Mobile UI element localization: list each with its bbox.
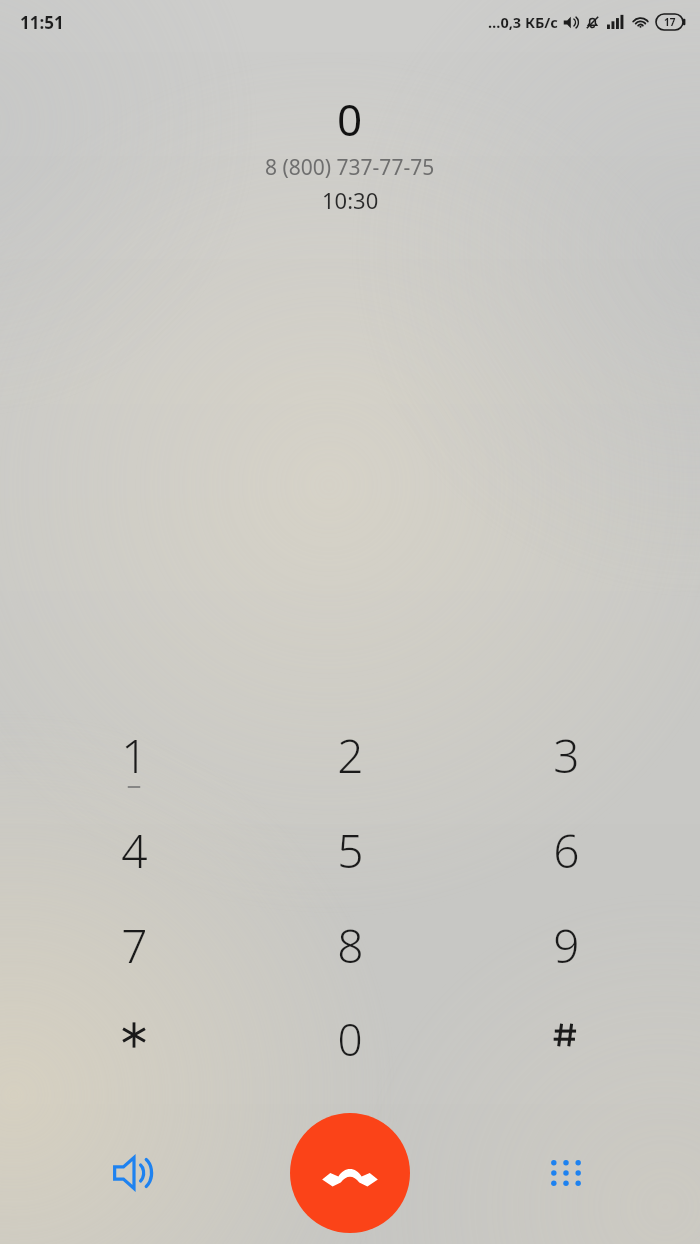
button[interactable]: Pound	[458, 1009, 674, 1072]
staticText: 7	[121, 914, 148, 977]
staticText: 8	[337, 914, 364, 977]
button[interactable]: 5	[242, 819, 458, 882]
staticText: 0	[337, 89, 363, 149]
staticText: …0,3 КБ/c	[488, 12, 558, 32]
button[interactable]: 6	[458, 819, 674, 882]
button[interactable]: Keypad	[458, 1108, 674, 1238]
staticText: 10:30	[322, 185, 379, 215]
button[interactable]: 7	[26, 914, 242, 977]
staticText: 4	[121, 819, 148, 882]
button[interactable]: 4	[26, 819, 242, 882]
staticText: 9	[553, 914, 580, 977]
staticText: 3	[553, 724, 580, 787]
button[interactable]: End call	[290, 1113, 410, 1233]
button[interactable]: 1	[26, 724, 242, 787]
staticText: 1	[121, 724, 148, 787]
button[interactable]: 8	[242, 914, 458, 977]
staticText: 11:51	[20, 11, 64, 34]
button[interactable]: 2	[242, 724, 458, 787]
button[interactable]: Star	[26, 1009, 242, 1072]
button[interactable]: 9	[458, 914, 674, 977]
button[interactable]: 0	[242, 1009, 458, 1072]
staticText: 8 (800) 737-77-75	[265, 153, 435, 182]
button[interactable]: 3	[458, 724, 674, 787]
staticText: 0	[337, 1009, 363, 1069]
button[interactable]: Speaker	[26, 1108, 242, 1238]
staticText: 2	[337, 724, 364, 787]
staticText: 6	[553, 819, 580, 882]
staticText: 17	[664, 15, 676, 29]
staticText: 5	[337, 819, 364, 882]
